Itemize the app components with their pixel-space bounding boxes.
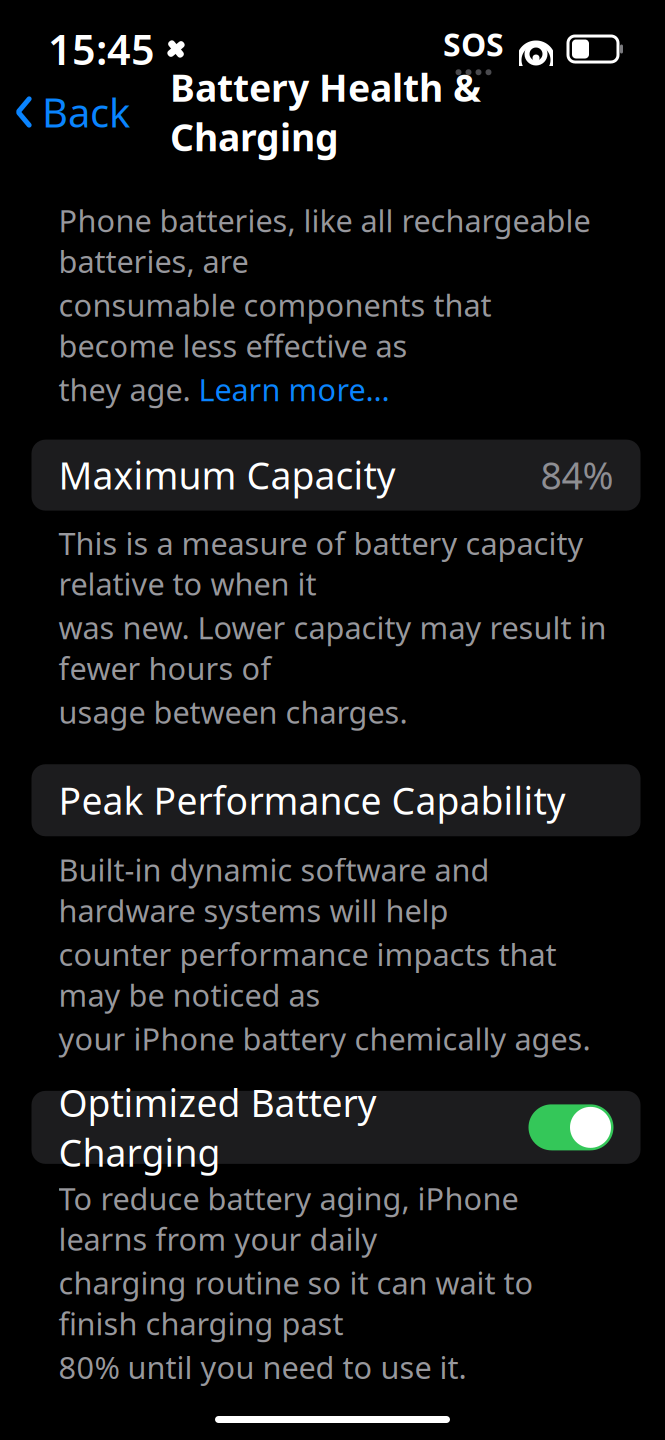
staticText: usage between charges.: [58, 691, 407, 732]
staticText: Learn more...: [198, 369, 389, 410]
staticText: This is a measure of battery capacity re…: [58, 523, 583, 604]
button[interactable]: Back: [0, 75, 130, 148]
button[interactable]: Maximum Capacity: [31, 440, 640, 511]
staticText: 15:45: [48, 22, 155, 76]
staticText: Peak Performance Capability: [58, 775, 565, 825]
staticText: Back: [42, 85, 130, 138]
staticText: 84%: [540, 450, 613, 500]
staticText: Maximum Capacity: [58, 450, 395, 500]
button[interactable]: Optimized Battery Charging: [31, 1091, 640, 1164]
staticText: Phone batteries, like all rechargeable b…: [58, 200, 590, 281]
staticText: Optimized Battery Charging: [58, 1078, 376, 1177]
staticText: SOS: [443, 23, 504, 65]
staticText: was new. Lower capacity may result in fe…: [58, 607, 606, 688]
staticText: Built-in dynamic software and hardware s…: [58, 849, 489, 931]
staticText: your iPhone battery chemically ages.: [58, 1018, 590, 1059]
staticText: consumable components that become less e…: [58, 284, 491, 366]
staticText: counter performance impacts that may be …: [58, 934, 556, 1015]
button[interactable]: Learn more...: [198, 369, 389, 410]
staticText: Battery Health & Charging: [170, 62, 481, 162]
staticText: To reduce battery aging, iPhone learns f…: [58, 1178, 518, 1259]
button[interactable]: Peak Performance Capability: [31, 764, 640, 836]
staticText: 80% until you need to use it.: [58, 1347, 466, 1387]
staticText: they age.: [58, 369, 198, 410]
staticText: charging routine so it can wait to finis…: [58, 1262, 533, 1344]
